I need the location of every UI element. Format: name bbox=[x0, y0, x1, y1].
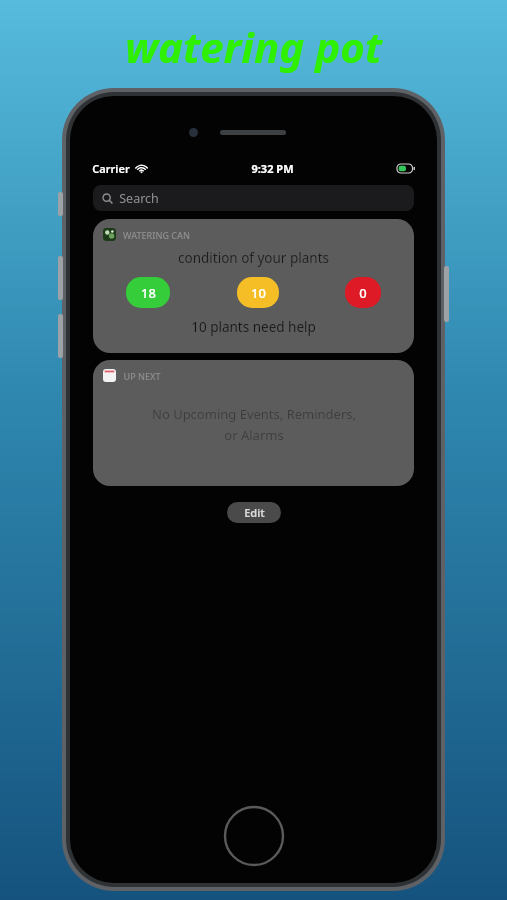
staticText: 10 plants need help bbox=[191, 318, 316, 336]
button[interactable]: Edit bbox=[227, 502, 281, 523]
button[interactable]: Search bbox=[93, 185, 414, 211]
staticText: 10 bbox=[251, 284, 266, 302]
staticText: 18 bbox=[141, 284, 156, 302]
button[interactable]: 0 bbox=[345, 277, 381, 308]
staticText: 9:32 PM bbox=[251, 161, 294, 176]
staticText: UP NEXT bbox=[123, 370, 161, 382]
other: Home bbox=[223, 805, 285, 867]
staticText: Carrier bbox=[92, 161, 130, 176]
staticText: or Alarms bbox=[224, 426, 284, 444]
other: Search bbox=[102, 193, 113, 204]
staticText: Edit bbox=[244, 505, 265, 520]
button[interactable]: UP NEXT bbox=[93, 360, 414, 486]
button[interactable]: 18 bbox=[126, 277, 170, 308]
button[interactable]: 10 bbox=[237, 277, 279, 308]
staticText: watering pot bbox=[125, 18, 382, 75]
staticText: No Upcoming Events, Reminders, bbox=[152, 405, 356, 423]
staticText: WATERING CAN bbox=[123, 229, 190, 241]
staticText: 0 bbox=[359, 284, 367, 302]
staticText: Search bbox=[119, 190, 159, 207]
button[interactable]: WATERING CAN bbox=[93, 219, 414, 353]
staticText: condition of your plants bbox=[178, 249, 329, 267]
